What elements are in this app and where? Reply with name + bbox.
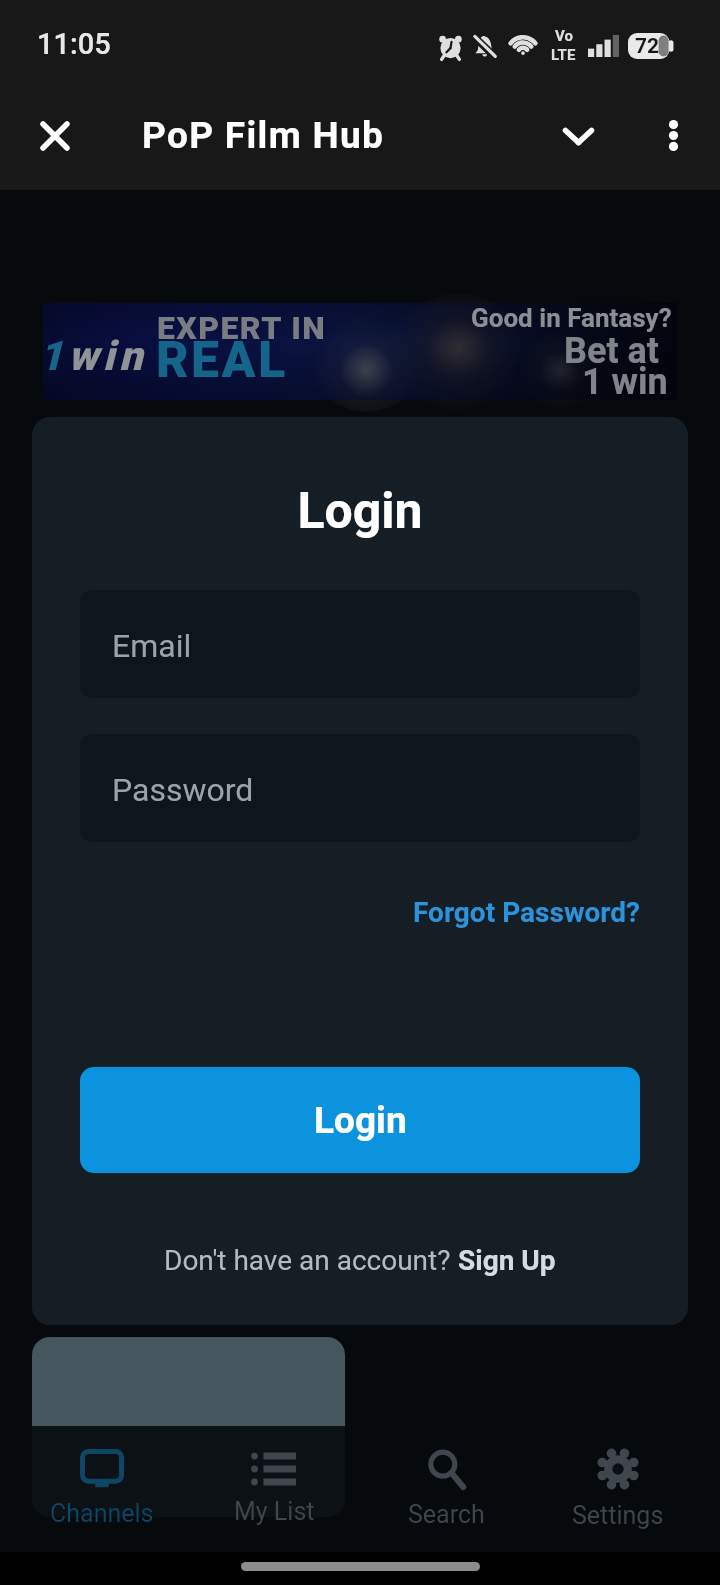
button[interactable]: Search <box>360 1426 532 1552</box>
staticText: Password <box>112 771 254 809</box>
staticText: 11:05 <box>37 27 111 61</box>
staticText: PoP Film Hub <box>142 114 385 157</box>
button[interactable]: My List <box>188 1426 360 1552</box>
button[interactable]: Advertisement <box>43 303 677 400</box>
button[interactable]: Password <box>80 734 640 842</box>
button[interactable]: Settings <box>532 1426 704 1552</box>
staticText: 72 <box>635 34 660 59</box>
staticText: My List <box>234 1497 315 1526</box>
staticText: Login <box>80 482 640 541</box>
staticText: Login <box>314 1099 407 1142</box>
button[interactable]: Expand <box>540 98 616 174</box>
button[interactable]: Channels <box>16 1426 188 1552</box>
button[interactable]: Login <box>80 1067 640 1173</box>
staticText: Bet at <box>564 330 660 372</box>
staticText: Settings <box>572 1501 664 1530</box>
staticText: Email <box>112 627 192 665</box>
staticText: LTE <box>551 46 576 64</box>
staticText: win <box>68 332 148 380</box>
staticText: Vo <box>555 27 573 45</box>
staticText: Forgot Password? <box>413 896 640 929</box>
button[interactable]: Don't have an account? <box>80 1244 640 1277</box>
staticText: Good in Fantasy? <box>471 303 672 333</box>
staticText: Search <box>408 1500 485 1529</box>
staticText: 1 <box>39 332 68 380</box>
staticText: Sign Up <box>458 1244 556 1277</box>
button[interactable]: Email <box>80 590 640 698</box>
button[interactable]: More options <box>634 96 712 174</box>
staticText: Don't have an account? <box>164 1244 458 1277</box>
staticText: EXPERT IN <box>157 309 327 347</box>
staticText: Channels <box>50 1499 154 1528</box>
button[interactable]: Forgot Password? <box>80 896 640 929</box>
staticText: 1 win <box>582 361 668 403</box>
button[interactable]: Close <box>21 102 89 170</box>
staticText: REAL <box>156 331 288 390</box>
